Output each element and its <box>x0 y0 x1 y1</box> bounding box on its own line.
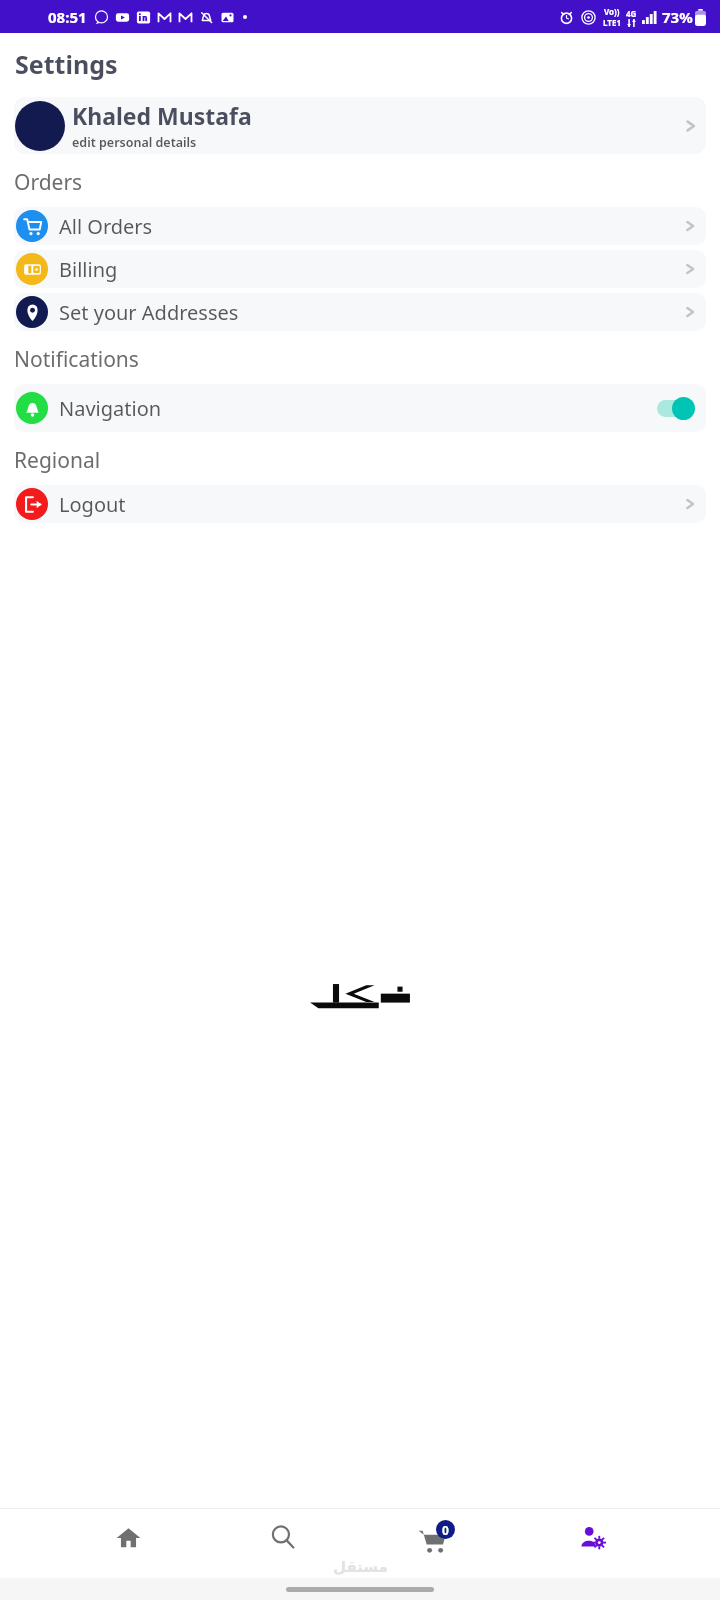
button[interactable]: Logout <box>14 485 706 523</box>
button[interactable]: Cart <box>400 1517 474 1557</box>
staticText: Billing <box>59 256 684 283</box>
staticText: Regional <box>14 446 101 475</box>
other: Open <box>684 260 696 278</box>
other: Open <box>684 495 696 513</box>
other: Open <box>684 116 697 136</box>
staticText: All Orders <box>59 213 684 240</box>
button[interactable]: Home <box>91 1517 165 1557</box>
staticText: مستقل <box>333 1558 388 1575</box>
staticText: Navigation <box>59 395 654 422</box>
staticText: edit personal details <box>72 134 197 151</box>
button[interactable]: Navigation <box>14 384 706 432</box>
button[interactable]: Khaled Mustafa <box>14 97 706 154</box>
button[interactable]: Search <box>246 1517 320 1557</box>
other: Open <box>684 217 696 235</box>
staticText: Vo)) <box>604 6 620 17</box>
staticText: 73% <box>662 7 693 27</box>
button[interactable]: Set your Addresses <box>14 293 706 331</box>
staticText: LTE1 <box>603 17 621 28</box>
button[interactable]: All Orders <box>14 207 706 245</box>
button[interactable]: Billing <box>14 250 706 288</box>
staticText: 0 <box>442 1522 449 1538</box>
staticText: 08:51 <box>48 7 87 27</box>
other: Open <box>684 303 696 321</box>
staticText: Orders <box>14 168 83 197</box>
staticText: Set your Addresses <box>59 299 684 326</box>
staticText: Notifications <box>14 345 139 374</box>
button[interactable]: Navigation notifications toggle <box>654 395 696 421</box>
staticText: Logout <box>59 491 684 518</box>
staticText: 4G <box>626 8 637 19</box>
staticText: Khaled Mustafa <box>72 100 252 131</box>
button[interactable]: Account settings <box>555 1517 629 1557</box>
staticText: Settings <box>15 47 118 81</box>
